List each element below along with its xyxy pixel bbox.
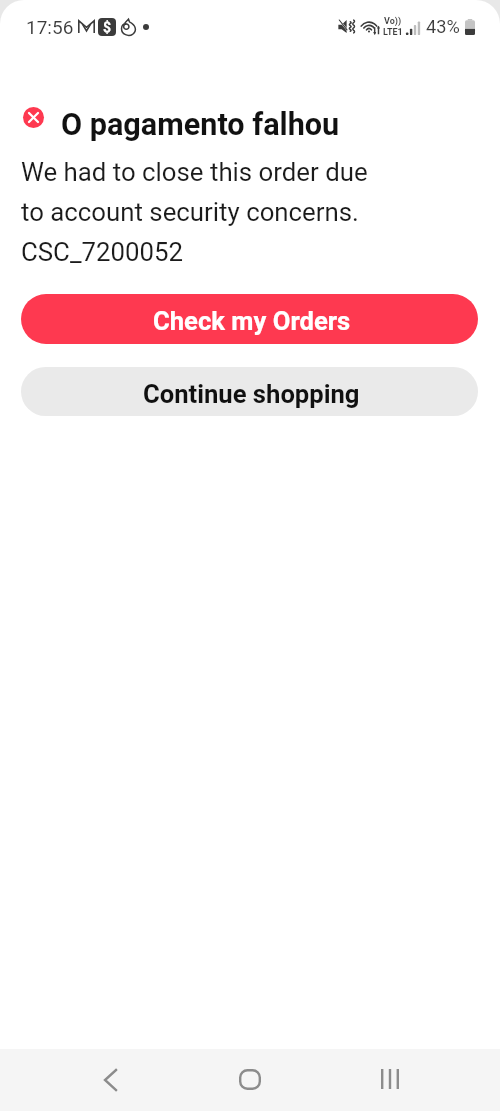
staticText: $ [103,19,112,35]
button[interactable]: Check my Orders [21,294,478,344]
staticText: LTE1 [383,27,403,38]
button[interactable]: Back [40,1049,180,1111]
staticText: Vo)) [384,16,402,27]
button[interactable]: Continue shopping [21,367,478,416]
button[interactable]: Recent apps [320,1048,460,1110]
staticText: Continue shopping [143,379,360,409]
staticText: 43% [426,16,460,37]
staticText: We had to close this order due to accoun… [21,150,387,270]
button[interactable]: Home [180,1048,320,1110]
staticText: Check my Orders [153,306,351,336]
staticText: O pagamento falhou [61,107,340,143]
staticText: 17:56 [26,16,74,38]
